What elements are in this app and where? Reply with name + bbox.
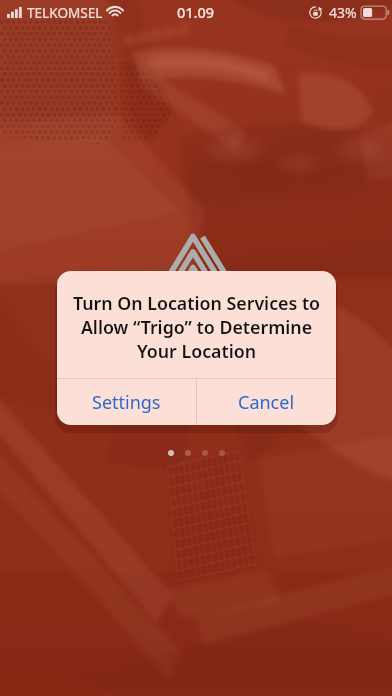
button[interactable]: Settings	[57, 379, 196, 425]
staticText: Turn On Location Services to Allow “Trig…	[69, 291, 324, 363]
button[interactable]: Cancel	[197, 379, 336, 425]
staticText: 01.09	[177, 2, 215, 22]
other: Rotation lock	[309, 6, 322, 19]
staticText: 43%	[329, 3, 357, 22]
staticText: TELKOMSEL	[27, 3, 103, 22]
staticText: Cancel	[238, 390, 295, 415]
staticText: Settings	[92, 390, 161, 415]
